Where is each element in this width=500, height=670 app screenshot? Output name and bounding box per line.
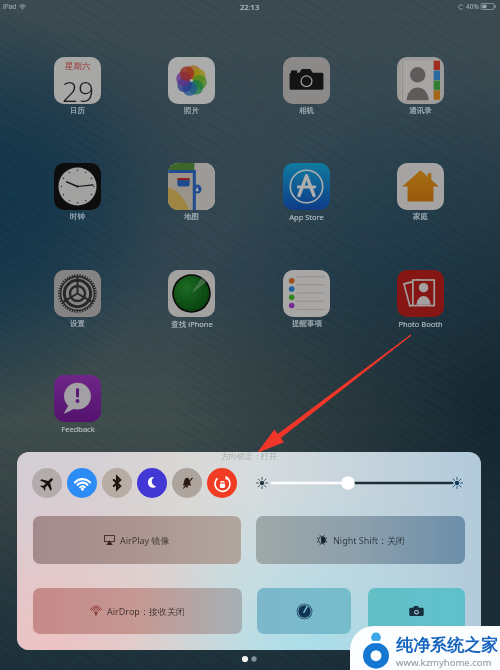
button[interactable]: Maps: [168, 163, 215, 210]
button[interactable]: Bluetooth: [102, 468, 132, 498]
button[interactable]: Camera: [368, 588, 465, 634]
staticText: iPad: [3, 2, 17, 11]
button[interactable]: Clock: [54, 163, 101, 210]
button[interactable]: Camera: [283, 57, 330, 104]
button[interactable]: Reminders: [283, 270, 330, 317]
staticText: 提醒事项: [292, 319, 322, 328]
button[interactable]: Photos: [168, 57, 215, 104]
staticText: Night Shift：关闭: [333, 534, 406, 546]
button[interactable]: Rotation lock: [207, 468, 237, 498]
staticText: 相机: [299, 106, 314, 115]
staticText: Photo Booth: [398, 319, 443, 329]
button[interactable]: Photo Booth: [397, 270, 444, 317]
button[interactable]: Timer: [257, 588, 351, 634]
staticText: 星期六: [65, 61, 91, 72]
button[interactable]: Contacts: [397, 57, 444, 104]
staticText: 29: [62, 72, 94, 104]
staticText: 纯净系统之家: [396, 635, 498, 656]
staticText: Feedback: [61, 424, 95, 434]
staticText: 22:13: [240, 2, 260, 12]
staticText: 家庭: [413, 212, 428, 221]
staticText: 时钟: [70, 212, 85, 221]
staticText: AirDrop：接收关闭: [107, 605, 185, 617]
button[interactable]: Find iPhone: [168, 270, 215, 317]
button[interactable]: Home: [397, 163, 444, 210]
staticText: 照片: [184, 106, 199, 115]
button[interactable]: Do not disturb: [137, 468, 167, 498]
button[interactable]: Airplane mode: [32, 468, 62, 498]
staticText: 设置: [70, 319, 85, 328]
staticText: 通讯录: [409, 106, 432, 115]
staticText: 方向锁定：打开: [221, 452, 277, 461]
staticText: 地图: [184, 212, 199, 221]
button[interactable]: App Store: [283, 163, 330, 210]
button[interactable]: Settings: [54, 270, 101, 317]
button[interactable]: AirPlay Mirroring: [33, 516, 241, 564]
staticText: www.kzmyhome.com: [396, 656, 492, 669]
staticText: 日历: [70, 106, 85, 115]
staticText: 查找 iPhone: [171, 319, 213, 329]
button[interactable]: Mute: [172, 468, 202, 498]
staticText: AirPlay 镜像: [120, 534, 170, 546]
staticText: App Store: [289, 212, 324, 222]
button[interactable]: Feedback: [54, 375, 101, 422]
button[interactable]: Wi-Fi: [67, 468, 97, 498]
button[interactable]: AirDrop: [33, 588, 242, 634]
button[interactable]: Night Shift: [256, 516, 465, 564]
button[interactable]: Calendar: [54, 57, 101, 104]
staticText: 40%: [466, 2, 479, 11]
